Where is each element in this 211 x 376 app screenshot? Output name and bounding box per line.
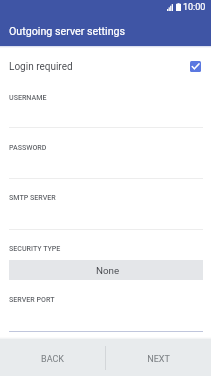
- staticText: BACK: [41, 354, 64, 365]
- staticText: PASSWORD: [9, 143, 47, 151]
- staticText: SERVER PORT: [9, 295, 55, 303]
- button[interactable]: Login required, checked: [190, 61, 201, 72]
- button[interactable]: None: [9, 260, 203, 280]
- staticText: None: [96, 265, 120, 276]
- staticText: Login required: [9, 61, 73, 73]
- button[interactable]: BACK: [0, 339, 105, 376]
- staticText: USERNAME: [9, 93, 47, 101]
- staticText: SMTP SERVER: [9, 193, 56, 201]
- other: Battery full: [176, 3, 181, 11]
- button[interactable]: USERNAME: [9, 88, 203, 128]
- button[interactable]: PASSWORD: [9, 138, 203, 179]
- staticText: 10:00: [183, 2, 206, 13]
- staticText: NEXT: [147, 354, 170, 365]
- staticText: Outgoing server settings: [9, 25, 126, 38]
- button[interactable]: NEXT: [106, 339, 211, 376]
- button[interactable]: Login required: [0, 48, 211, 84]
- button[interactable]: SERVER PORT: [9, 290, 203, 332]
- other: Mobile signal strength: [167, 3, 173, 11]
- staticText: SECURITY TYPE: [9, 244, 61, 252]
- button[interactable]: SMTP SERVER: [9, 188, 203, 230]
